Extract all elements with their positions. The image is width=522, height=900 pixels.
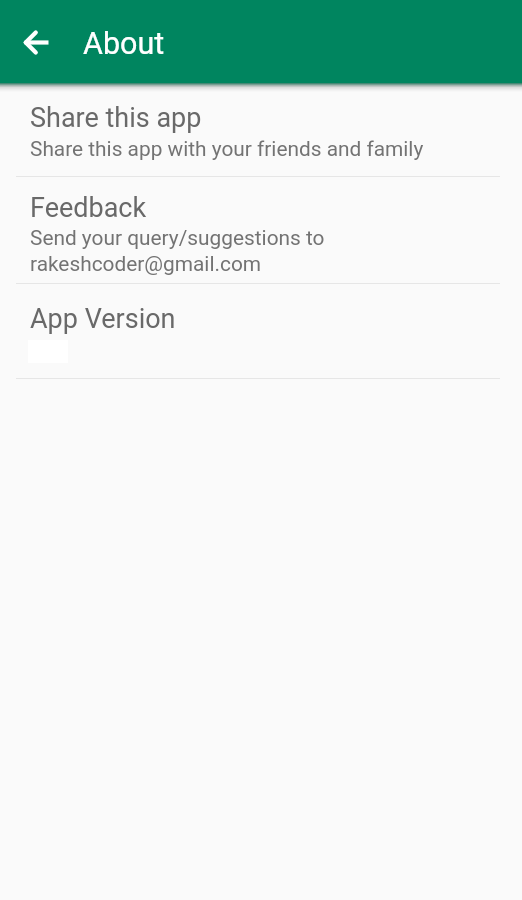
staticText: Feedback	[30, 192, 147, 224]
staticText: Send your query/suggestions to rakeshcod…	[30, 224, 325, 276]
staticText: App Version	[30, 303, 176, 335]
staticText: Share this app	[30, 102, 202, 134]
button[interactable]: App Version	[0, 284, 522, 378]
staticText: About	[83, 26, 165, 62]
button[interactable]: Back	[12, 18, 60, 66]
button[interactable]: Feedback	[0, 177, 522, 283]
button[interactable]: Share this app	[0, 83, 522, 176]
staticText: Share this app with your friends and fam…	[30, 135, 424, 161]
